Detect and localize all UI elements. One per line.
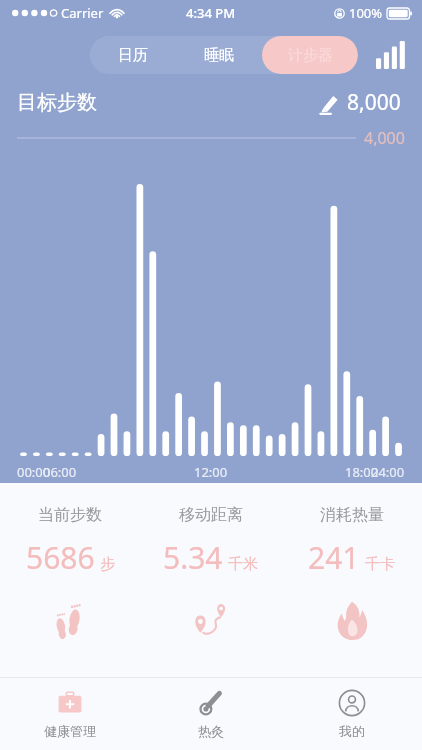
button[interactable]: 热灸 xyxy=(140,678,281,750)
button[interactable]: 移动距离 xyxy=(140,505,281,644)
staticText: 千卡 xyxy=(365,555,395,574)
staticText: 5.34 xyxy=(163,537,223,578)
staticText: 5686 xyxy=(26,537,95,578)
button[interactable]: 睡眠 xyxy=(176,36,262,74)
staticText: 热灸 xyxy=(198,723,224,739)
staticText: 06:00 xyxy=(43,463,77,481)
staticText: 睡眠 xyxy=(204,46,234,65)
staticText: 计步器 xyxy=(288,46,333,65)
staticText: 00:00 xyxy=(17,463,51,481)
staticText: 100% xyxy=(349,4,383,22)
button[interactable]: 消耗热量 xyxy=(281,505,422,644)
staticText: 24:00 xyxy=(371,463,405,481)
staticText: 12:00 xyxy=(194,463,228,481)
staticText: 步 xyxy=(100,555,115,574)
staticText: 消耗热量 xyxy=(320,505,384,525)
button[interactable]: 日历 xyxy=(90,36,176,74)
button[interactable]: 健康管理 xyxy=(0,678,140,750)
button[interactable]: 计步器 xyxy=(262,36,358,74)
staticText: 目标步数 xyxy=(17,90,97,115)
staticText: 日历 xyxy=(118,46,148,65)
staticText: 18:00 xyxy=(345,463,379,481)
staticText: 当前步数 xyxy=(38,505,102,525)
staticText: 4,000 xyxy=(364,127,405,149)
staticText: 移动距离 xyxy=(179,505,243,525)
staticText: 千米 xyxy=(228,555,258,574)
button[interactable]: Statistics xyxy=(374,38,408,72)
staticText: Carrier xyxy=(61,4,104,22)
staticText: 241 xyxy=(308,537,360,578)
staticText: 4:34 PM xyxy=(186,4,236,22)
button[interactable]: 8,000 xyxy=(312,84,405,121)
staticText: 8,000 xyxy=(347,88,401,117)
button[interactable]: 当前步数 xyxy=(0,505,140,644)
staticText: 我的 xyxy=(339,723,365,739)
staticText: 健康管理 xyxy=(44,723,96,739)
button[interactable]: 我的 xyxy=(281,678,422,750)
